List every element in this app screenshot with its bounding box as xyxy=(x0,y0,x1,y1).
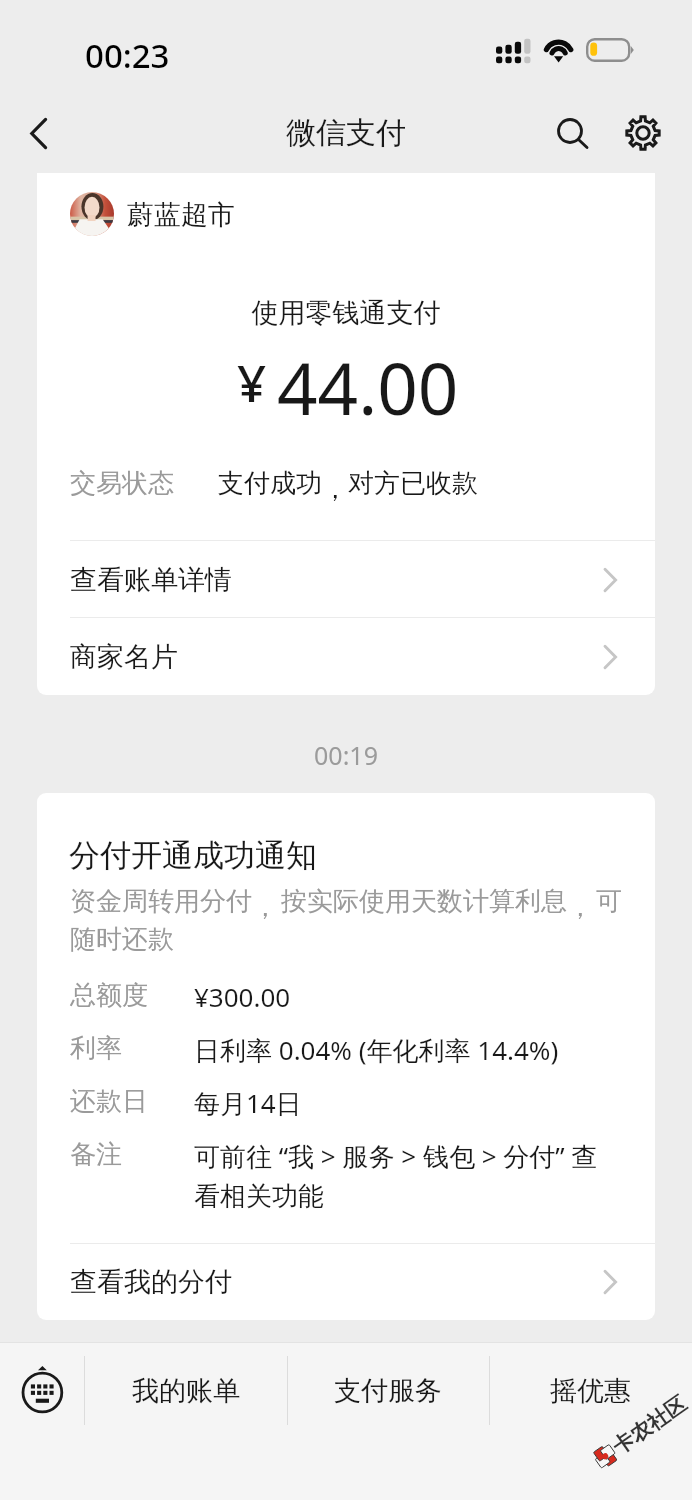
staticText: 摇优惠 xyxy=(550,1374,631,1408)
button[interactable]: 摇优惠 xyxy=(489,1342,692,1439)
staticText: 备注 xyxy=(70,1138,194,1171)
staticText: 支付成功 xyxy=(218,467,322,500)
staticText: 分付开通成功通知 xyxy=(69,836,317,875)
button[interactable]: 我的账单 xyxy=(85,1342,287,1439)
button[interactable]: Settings xyxy=(612,102,676,166)
staticText: 对方已收款 xyxy=(348,467,478,500)
staticText: 查看我的分付 xyxy=(70,1265,603,1299)
staticText: 可前往 “我 > 服务 > 钱包 > 分付” 查看相关功能 xyxy=(194,1138,612,1213)
staticText: 卡农社区 xyxy=(608,1390,691,1460)
staticText: ¥300.00 xyxy=(194,979,612,1014)
staticText: 商家名片 xyxy=(70,640,603,674)
staticText: 蔚蓝超市 xyxy=(127,198,235,232)
staticText: 资金周转用分付 xyxy=(70,885,252,918)
staticText: ， xyxy=(322,473,348,506)
staticText: 每月14日 xyxy=(194,1085,612,1121)
staticText: 交易状态 xyxy=(70,467,174,500)
staticText: 支付服务 xyxy=(334,1374,442,1408)
staticText: ¥ xyxy=(237,347,267,416)
button[interactable]: 查看我的分付 xyxy=(37,1244,655,1320)
button[interactable]: Search xyxy=(538,100,602,164)
staticText: 使用零钱通支付 xyxy=(37,296,655,330)
button[interactable]: 查看账单详情 xyxy=(37,541,655,618)
staticText: 查看账单详情 xyxy=(70,563,603,597)
button[interactable]: 商家名片 xyxy=(37,618,655,695)
staticText: 利率 xyxy=(70,1032,194,1065)
staticText: 按实际使用天数计算利息 xyxy=(281,885,567,918)
staticText: 44.00 xyxy=(277,339,459,436)
staticText: 微信支付 xyxy=(0,114,692,152)
staticText: 随时还款 xyxy=(70,923,174,956)
staticText: 我的账单 xyxy=(132,1374,240,1408)
button[interactable]: Keyboard xyxy=(0,1342,85,1439)
staticText: ， xyxy=(252,891,278,924)
staticText: 总额度 xyxy=(70,979,194,1012)
button[interactable]: 支付服务 xyxy=(287,1342,489,1439)
button[interactable]: Back xyxy=(6,98,78,170)
staticText: 还款日 xyxy=(70,1085,194,1118)
staticText: 00:19 xyxy=(0,738,692,772)
staticText: ， xyxy=(567,891,593,924)
staticText: 00:23 xyxy=(85,33,170,78)
staticText: 日利率 0.04% (年化利率 14.4%) xyxy=(194,1032,612,1068)
staticText: 可 xyxy=(596,885,622,918)
